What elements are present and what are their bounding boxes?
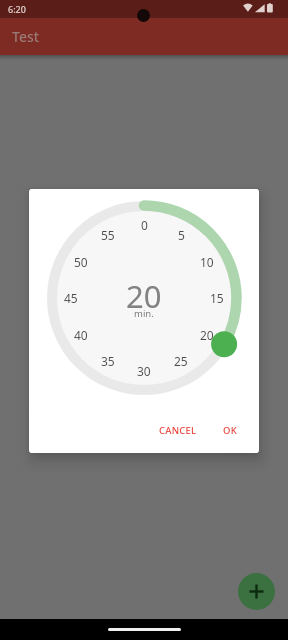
button[interactable]: CANCEL xyxy=(148,414,207,446)
staticText: 30 xyxy=(137,363,151,379)
staticText: 25 xyxy=(174,353,188,369)
staticText: 20 xyxy=(126,275,162,315)
staticText: 50 xyxy=(74,254,88,270)
staticText: 20 xyxy=(200,327,214,343)
staticText: 0 xyxy=(141,217,148,233)
staticText: 45 xyxy=(64,290,78,306)
staticText: 15 xyxy=(210,290,224,306)
staticText: 35 xyxy=(101,353,115,369)
staticText: 40 xyxy=(74,327,88,343)
staticText: 6:20 xyxy=(8,3,26,15)
button[interactable]: OK xyxy=(209,414,251,446)
staticText: Test xyxy=(12,27,40,46)
staticText: CANCEL xyxy=(159,424,197,437)
staticText: min. xyxy=(134,307,154,320)
staticText: 55 xyxy=(101,227,115,243)
button[interactable] xyxy=(238,573,275,610)
staticText: OK xyxy=(223,424,237,437)
staticText: 10 xyxy=(200,254,214,270)
staticText: 5 xyxy=(178,227,185,243)
